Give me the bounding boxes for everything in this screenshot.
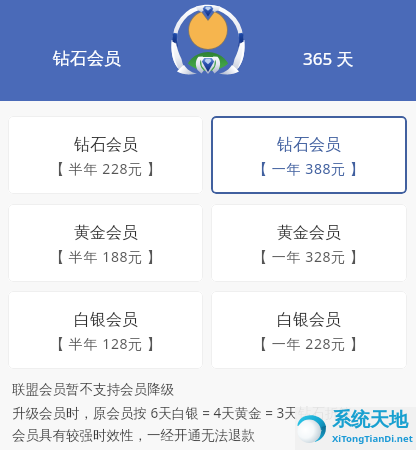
staticText: 【 半年 128元 】 [50,334,162,353]
button[interactable]: 钻石会员 [8,116,203,194]
staticText: 会员具有较强时效性，一经开通无法退款 [12,427,255,444]
staticText: 黄金会员 [277,223,341,243]
staticText: 系统天地 [332,408,408,432]
staticText: 黄金会员 [74,223,138,243]
button[interactable]: 白银会员 [211,291,407,369]
staticText: 【 一年 388元 】 [253,159,365,178]
staticText: 365 天 [303,47,354,70]
staticText: 【 一年 328元 】 [253,247,365,266]
staticText: 钻石会员 [277,135,341,155]
button[interactable]: 白银会员 [8,291,203,369]
staticText: 钻石会员 [53,48,121,69]
staticText: 联盟会员暂不支持会员降级 [12,381,174,398]
button[interactable]: 黄金会员 [211,204,407,282]
staticText: XiTongTianDi.net [332,432,413,445]
button[interactable]: 黄金会员 [8,204,203,282]
staticText: 钻石会员 [74,135,138,155]
staticText: 【 一年 228元 】 [253,334,365,353]
staticText: 【 半年 228元 】 [50,159,162,178]
staticText: 【 半年 188元 】 [50,247,162,266]
button[interactable]: 钻石会员 [211,116,407,194]
staticText: 白银会员 [277,310,341,330]
staticText: 升级会员时，原会员按 6天白银 = 4天黄金 = 3天钻石折算 [12,404,352,422]
staticText: 白银会员 [74,310,138,330]
